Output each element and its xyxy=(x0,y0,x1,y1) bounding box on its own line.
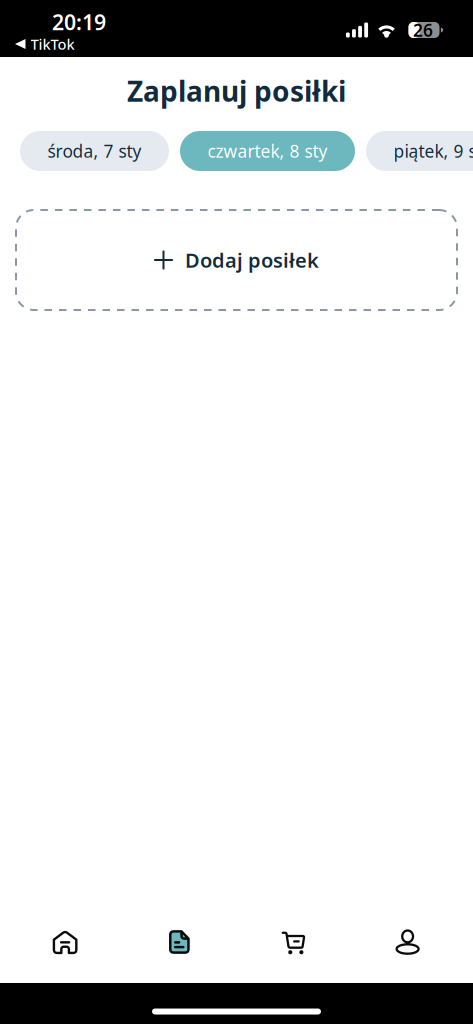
button[interactable]: Profile xyxy=(351,920,465,964)
staticText: 20:19 xyxy=(52,8,106,36)
button[interactable]: piątek, 9 sty xyxy=(366,131,473,171)
staticText: Zaplanuj posiłki xyxy=(127,72,346,110)
button[interactable]: czwartek, 8 sty xyxy=(180,131,355,171)
button[interactable]: środa, 7 sty xyxy=(20,131,169,171)
button[interactable]: Shopping list xyxy=(236,920,351,964)
staticText: Dodaj posiłek xyxy=(185,247,319,273)
button[interactable]: Meal plan xyxy=(122,920,236,964)
staticText: piątek, 9 sty xyxy=(393,139,473,162)
staticText: 26 xyxy=(413,18,433,41)
staticText: TikTok xyxy=(30,34,74,54)
button[interactable]: Home xyxy=(8,920,122,964)
staticText: środa, 7 sty xyxy=(47,139,141,162)
staticText: czwartek, 8 sty xyxy=(207,139,327,162)
button[interactable]: Dodaj posiłek xyxy=(15,209,458,311)
